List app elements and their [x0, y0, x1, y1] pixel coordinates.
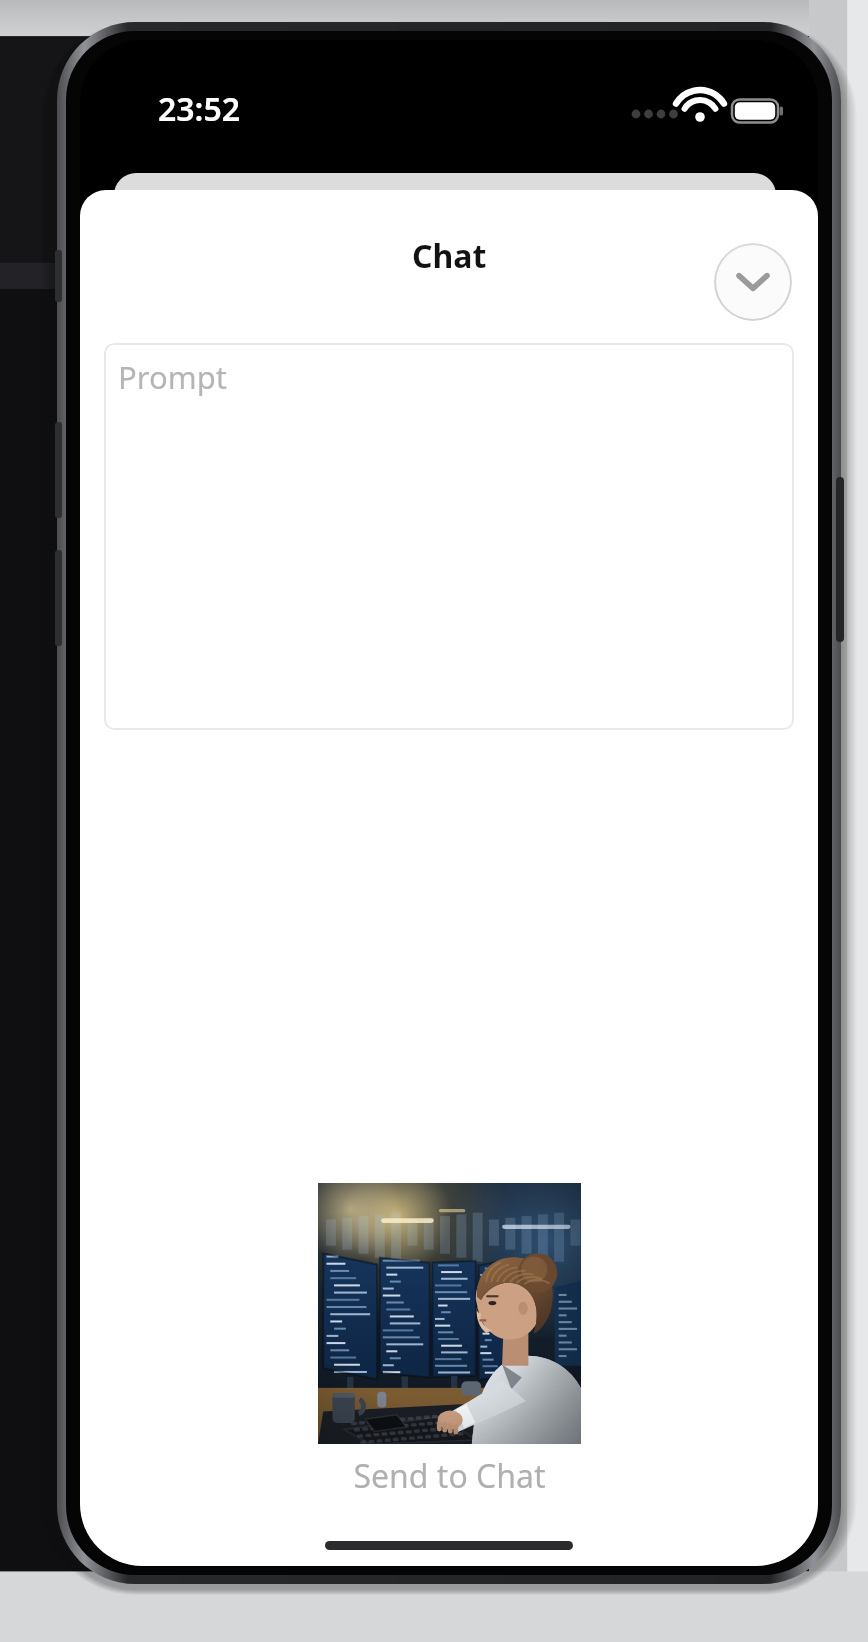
staticText: Chat	[412, 234, 487, 278]
button[interactable]: Send to Chat	[318, 1183, 581, 1498]
staticText: 23:52	[158, 87, 241, 131]
button[interactable]: Prompt	[104, 343, 794, 730]
staticText: Prompt	[118, 356, 227, 398]
button[interactable]: Collapse	[714, 243, 792, 321]
staticText: Send to Chat	[353, 1454, 546, 1498]
